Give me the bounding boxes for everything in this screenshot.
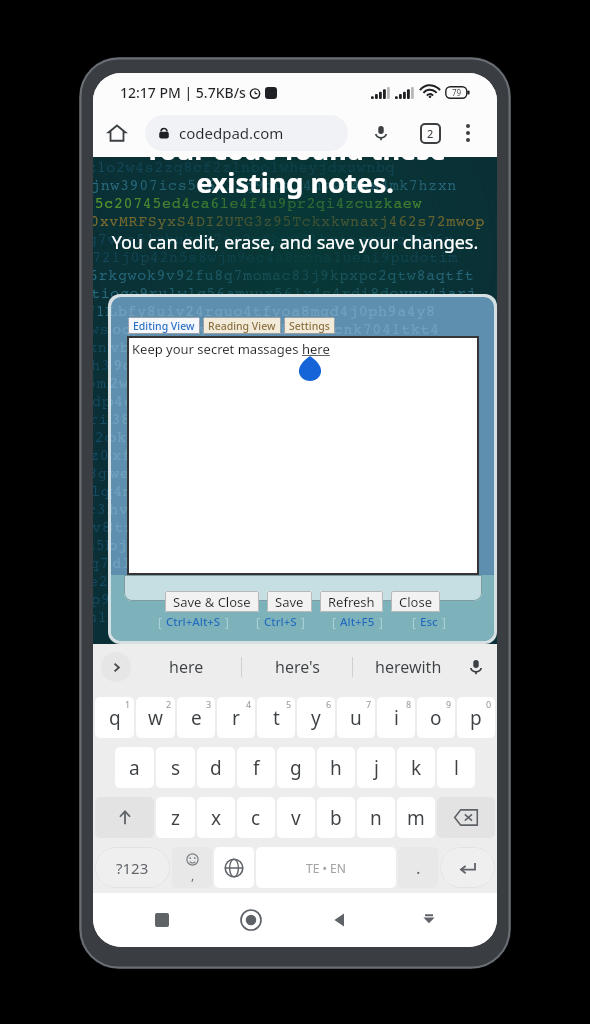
button[interactable]: Home xyxy=(97,113,137,153)
staticText: ri38zqpeuh4n2wc9lmd6tzxbkg0safv7yje xyxy=(93,411,427,428)
staticText: u1cngq7zxldk3wby9mrovt842sajephif56 xyxy=(111,609,429,626)
staticText: You can edit, erase, and save your chang… xyxy=(93,230,497,255)
staticText: jnw3907ics5f6x32q9quw34uvyz4ks4mk7hzxn xyxy=(93,177,457,194)
button[interactable]: codedpad.com xyxy=(145,115,348,151)
button[interactable]: Hide keyboard xyxy=(408,899,450,941)
button[interactable]: y xyxy=(297,697,335,738)
button[interactable]: ?123 xyxy=(95,847,170,888)
button[interactable]: q xyxy=(95,697,134,738)
staticText: ] xyxy=(379,614,383,630)
staticText: 5m2wqj8fxel1ncr9uaa4z2v8bfmqd7k3rt0 xyxy=(111,375,428,392)
staticText: 8gweq2j6xprzd0v3bk9sufcnltm157yahve xyxy=(93,465,426,482)
staticText: e xyxy=(191,705,202,731)
staticText: 6rkgwok9v92fu8q7momac83j9kpxpc2qtw8aqtft xyxy=(93,267,475,284)
staticText: Close xyxy=(399,593,432,611)
button[interactable]: a xyxy=(115,747,154,788)
button[interactable]: v xyxy=(277,797,315,838)
button[interactable]: k xyxy=(397,747,435,788)
staticText: j xyxy=(374,755,379,781)
button[interactable]: n xyxy=(357,797,395,838)
staticText: c xyxy=(251,805,261,831)
staticText: Reading View xyxy=(208,319,276,333)
staticText: e2mswa6xtjz0rnkv4p9lchqb8du1fogi375 xyxy=(93,573,427,590)
button[interactable]: More options xyxy=(448,113,488,153)
staticText: wsoqp82mn0xyd2zwi1mdf23wucnk7041tkt4 xyxy=(111,321,440,338)
staticText: Your code found these existing notes. xyxy=(93,157,497,201)
button[interactable]: Tabs xyxy=(410,113,450,153)
staticText: 5 xyxy=(286,698,292,710)
button[interactable]: h xyxy=(317,747,355,788)
staticText: 12:17 PM | 5.7KB/s xyxy=(120,83,246,102)
button[interactable]: o xyxy=(417,697,455,738)
button[interactable]: m xyxy=(397,797,435,838)
button[interactable]: e xyxy=(177,697,215,738)
staticText: q7dlu3nxvm9koz5wbriet18cpyjafgs204h xyxy=(93,555,428,572)
staticText: ] xyxy=(442,614,446,630)
staticText: x xyxy=(211,805,222,831)
button[interactable]: d xyxy=(197,747,235,788)
staticText: herewith xyxy=(375,656,442,678)
button[interactable]: w xyxy=(136,697,175,738)
staticText: lq4mzn8dvt2cgb7e0xwsrjkpyif3u96odah xyxy=(93,483,429,500)
staticText: z0xf7ncq3wjb8rvm5ek2dhylpt94guoais6 xyxy=(93,447,428,464)
button[interactable]: Recent apps xyxy=(141,899,183,941)
staticText: tiogo9rulwlg56amuux561x4s4rdi8dovvw4jarj xyxy=(93,285,477,302)
button[interactable]: z xyxy=(156,797,195,838)
button[interactable]: Editing View xyxy=(128,317,200,334)
staticText: u1cngq7zxldk3wby9mrovt842sajephif56 xyxy=(93,609,426,626)
staticText: 65c20745ed4ca6le4f4u9pr2qi4zcuzkaew xyxy=(93,195,423,212)
button[interactable]: c xyxy=(237,797,275,838)
staticText: 2 xyxy=(427,126,434,141)
button[interactable]: Back xyxy=(319,899,361,941)
staticText: h39qmr8zwer0pxqi4ejg2mc0sqlt9vb4xzp xyxy=(111,357,432,374)
button[interactable]: g xyxy=(277,747,315,788)
button[interactable]: b xyxy=(317,797,355,838)
staticText: i xyxy=(394,705,399,731)
button[interactable]: Save xyxy=(267,591,312,612)
staticText: here xyxy=(302,340,330,358)
button[interactable]: i xyxy=(377,697,415,738)
staticText: f1Lbfy8uiv24rguo4tfyoa8mgd4j0ph9a4y8 xyxy=(111,303,436,320)
staticText: f1Lbfy8uiv24rguo4tfyoa8mgd4j0ph9a4y8 xyxy=(93,303,433,320)
button[interactable]: t xyxy=(257,697,295,738)
button[interactable]: s xyxy=(156,747,195,788)
button[interactable]: Enter xyxy=(440,847,495,888)
staticText: 7 xyxy=(366,698,372,710)
button[interactable]: Save & Close xyxy=(165,591,259,612)
staticText: xnvb4ue9o2hg0d8tufr3bcewizmd91kws72 xyxy=(93,339,426,356)
button[interactable]: p xyxy=(457,697,495,738)
button[interactable]: Refresh xyxy=(320,591,383,612)
staticText: ] xyxy=(225,614,229,630)
button[interactable]: Space xyxy=(256,847,396,888)
button[interactable]: . xyxy=(398,847,438,888)
button[interactable]: x xyxy=(197,797,235,838)
button[interactable]: Home xyxy=(230,899,272,941)
button[interactable]: Emoji xyxy=(172,847,212,888)
button[interactable]: Change language xyxy=(214,847,254,888)
button[interactable]: Backspace xyxy=(437,797,495,838)
button[interactable]: Voice search xyxy=(361,113,401,153)
staticText: o xyxy=(430,705,442,731)
button[interactable]: Close xyxy=(391,591,440,612)
staticText: Editing View xyxy=(133,319,195,333)
staticText: m xyxy=(407,805,425,831)
button[interactable]: More suggestions xyxy=(101,652,131,682)
button[interactable]: Reading View xyxy=(203,317,281,334)
staticText: , xyxy=(191,867,195,883)
button[interactable]: Shift xyxy=(95,797,154,838)
button[interactable]: j xyxy=(357,747,395,788)
staticText: 9 xyxy=(446,698,452,710)
staticText: xnvb4ue9o2hg0d8tufr3bcewizmd91kws72 xyxy=(111,339,429,356)
staticText: p9rkyg4vzw2hbxs6cnumt0j5adlq183efio xyxy=(93,591,429,608)
staticText: Save & Close xyxy=(173,593,251,611)
button[interactable]: r xyxy=(217,697,255,738)
staticText: t xyxy=(273,705,280,731)
button[interactable]: u xyxy=(337,697,375,738)
button[interactable]: l xyxy=(437,747,475,788)
button[interactable]: Voice input xyxy=(463,654,489,680)
staticText: n xyxy=(370,805,382,831)
staticText: ri38zqpeuh4n2wc9lmd6tzxbkg0safv7yje xyxy=(111,411,430,428)
button[interactable]: f xyxy=(237,747,275,788)
staticText: b xyxy=(330,805,342,831)
button[interactable]: Settings xyxy=(284,317,335,334)
